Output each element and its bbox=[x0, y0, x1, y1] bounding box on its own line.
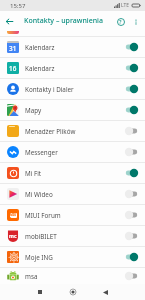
button[interactable]: Mi Fit bbox=[0, 163, 145, 183]
staticText: mc bbox=[9, 233, 17, 240]
staticText: Menadżer Plików bbox=[25, 127, 76, 136]
staticText: Mi Wideo bbox=[25, 190, 53, 199]
button[interactable]: Messenger bbox=[0, 142, 145, 162]
staticText: 31 bbox=[9, 44, 17, 53]
button[interactable]: msa bbox=[0, 268, 145, 284]
staticText: 16 bbox=[9, 64, 17, 73]
button[interactable]: Help bbox=[114, 15, 127, 28]
button[interactable]: Mapy bbox=[0, 100, 145, 120]
staticText: mobiBILET bbox=[25, 232, 57, 241]
staticText: Messenger bbox=[25, 148, 58, 157]
staticText: MIUI bbox=[10, 213, 17, 218]
staticText: LTE bbox=[121, 2, 130, 9]
staticText: Kalendarz bbox=[25, 43, 55, 52]
button[interactable]: Mi Wideo bbox=[0, 184, 145, 204]
staticText: ? bbox=[119, 18, 122, 25]
button[interactable]: Back bbox=[97, 284, 113, 300]
button[interactable]: 31 bbox=[0, 37, 145, 57]
button[interactable]: MIUI bbox=[0, 205, 145, 225]
button[interactable]: Moje ING bbox=[0, 247, 145, 267]
staticText: Kontakty – uprawnienia bbox=[24, 16, 103, 26]
staticText: Mi Fit bbox=[25, 169, 42, 178]
staticText: Kalendarz bbox=[25, 64, 55, 73]
button[interactable]: Recent apps bbox=[32, 284, 48, 300]
staticText: Moje ING bbox=[25, 253, 53, 262]
staticText: 15:57 bbox=[10, 2, 26, 10]
button[interactable]: Menadżer Plików bbox=[0, 121, 145, 141]
staticText: Mapy bbox=[25, 106, 42, 115]
button[interactable]: 16 bbox=[0, 58, 145, 78]
staticText: Kontakty i Dialer bbox=[25, 85, 74, 94]
button[interactable]: mc bbox=[0, 226, 145, 246]
staticText: msa bbox=[25, 272, 38, 281]
button[interactable]: Back bbox=[0, 12, 19, 31]
button[interactable]: Home bbox=[65, 284, 81, 300]
button[interactable]: Kontakty i Dialer bbox=[0, 79, 145, 99]
staticText: MIUI Forum bbox=[25, 211, 61, 220]
button[interactable]: More options bbox=[127, 13, 144, 30]
